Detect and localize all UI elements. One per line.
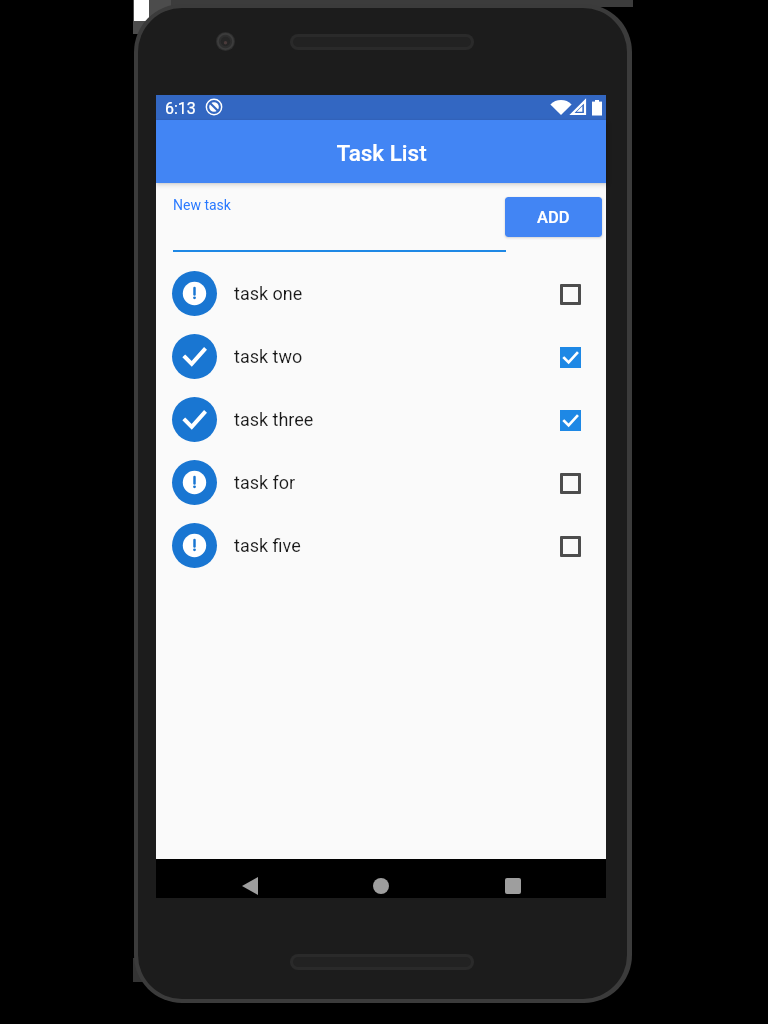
button[interactable]: Back [224, 866, 276, 905]
button[interactable]: ADD [505, 197, 602, 237]
button[interactable]: Toggle task for [550, 463, 590, 503]
staticText: task two [234, 346, 303, 367]
staticText: ADD [537, 208, 570, 227]
button[interactable]: Home [355, 866, 407, 905]
button[interactable]: Toggle task two [550, 337, 590, 377]
staticText: task three [234, 409, 314, 430]
button[interactable]: task two [156, 325, 606, 388]
staticText: task five [234, 535, 301, 556]
button[interactable]: New task [173, 191, 506, 252]
staticText: 6:13 [165, 99, 196, 118]
button[interactable]: task five [156, 514, 606, 577]
button[interactable]: task three [156, 388, 606, 451]
button[interactable]: Recent apps [487, 866, 539, 905]
button[interactable]: task for [156, 451, 606, 514]
button[interactable]: Toggle task one [550, 274, 590, 314]
staticText: Task List [336, 140, 427, 166]
staticText: New task [173, 197, 231, 213]
button[interactable]: Toggle task three [550, 400, 590, 440]
staticText: task one [234, 283, 303, 304]
button[interactable]: task one [156, 262, 606, 325]
button[interactable]: Toggle task five [550, 526, 590, 566]
staticText: task for [234, 472, 296, 493]
